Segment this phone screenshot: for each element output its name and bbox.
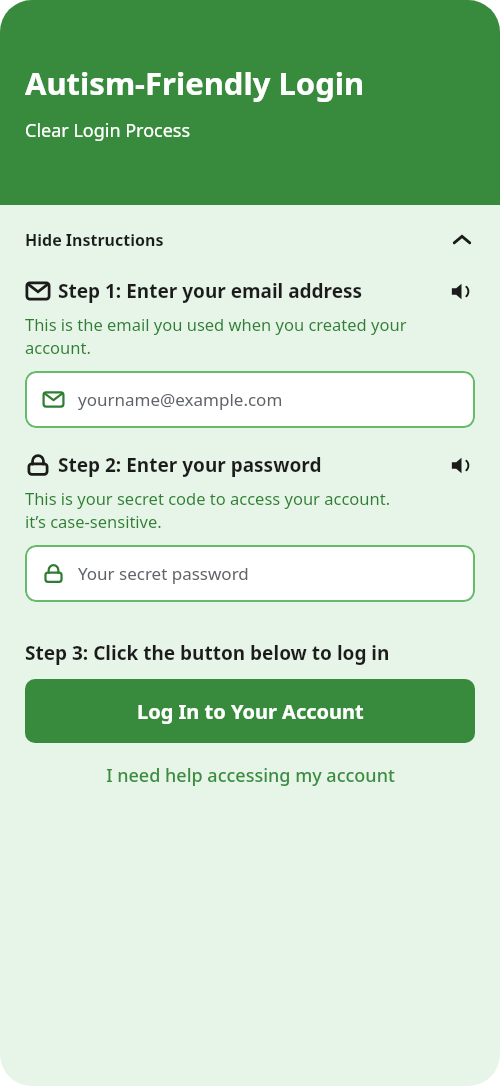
button[interactable]: I need help accessing my account [94,757,407,794]
staticText: Hide Instructions [25,229,164,251]
button[interactable]: Your secret password [25,545,475,602]
staticText: This is the email you used when you crea… [25,313,407,359]
button[interactable]: Read aloud [447,451,475,479]
button[interactable]: Log In to Your Account [25,679,475,743]
button[interactable]: Hide Instructions [0,205,500,263]
button[interactable]: yourname@example.com [25,371,475,428]
staticText: Your secret password [78,562,249,585]
other: Collapse instructions [449,227,475,253]
staticText: Step 2: Enter your password [58,452,322,478]
staticText: Autism-Friendly Login [25,62,365,104]
staticText: This is your secret code to access your … [25,487,391,533]
staticText: Step 3: Click the button below to log in [25,640,390,666]
staticText: Clear Login Process [25,118,191,143]
staticText: Step 1: Enter your email address [58,278,363,304]
button[interactable]: Read aloud [447,277,475,305]
staticText: yourname@example.com [78,388,283,411]
staticText: I need help accessing my account [106,763,395,788]
staticText: Log In to Your Account [137,698,364,725]
